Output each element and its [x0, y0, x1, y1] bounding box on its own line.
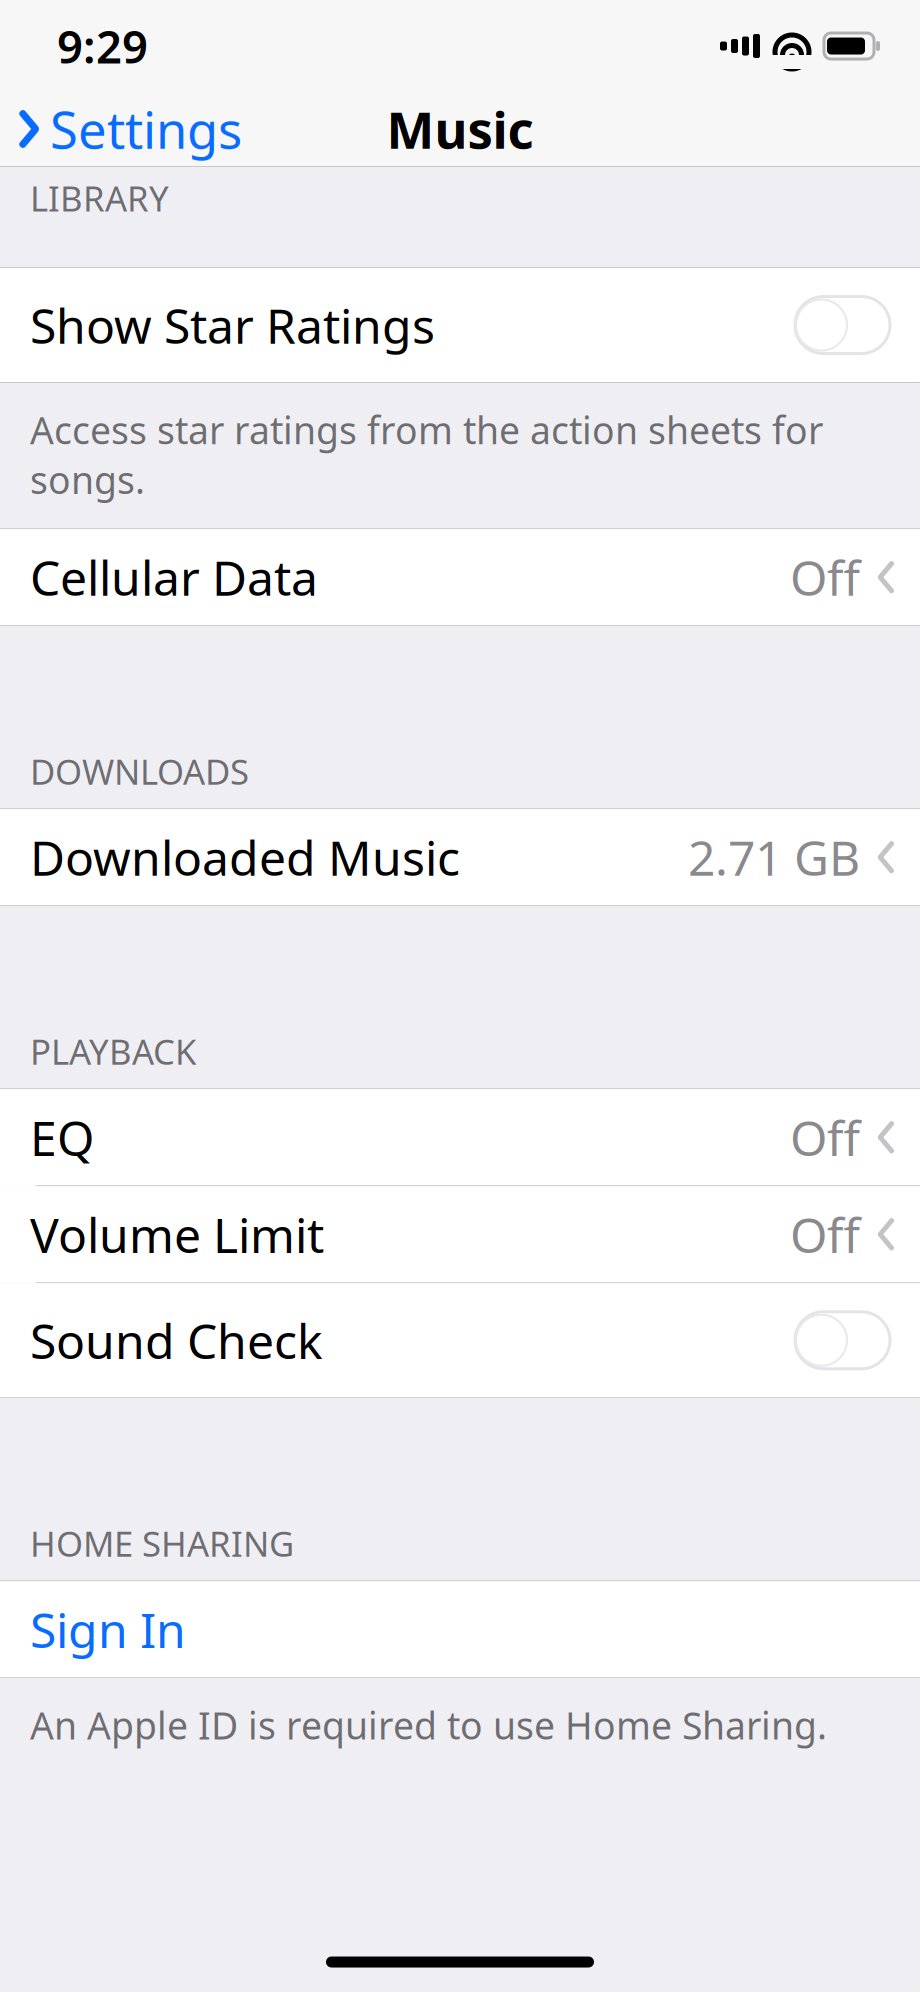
staticText: Sign In: [30, 1597, 186, 1661]
staticText: Show Star Ratings: [30, 293, 435, 357]
button[interactable]: Volume Limit: [0, 1186, 920, 1282]
staticText: Access star ratings from the action shee…: [30, 405, 823, 504]
staticText: Off: [790, 1202, 860, 1266]
button[interactable]: Settings: [0, 87, 242, 171]
button[interactable]: Sign In: [0, 1581, 920, 1677]
staticText: Off: [790, 545, 860, 609]
staticText: Music: [386, 95, 533, 163]
staticText: Downloaded Music: [30, 825, 460, 889]
staticText: Volume Limit: [30, 1202, 324, 1266]
staticText: LIBRARY: [30, 175, 169, 221]
staticText: 2.71 GB: [688, 825, 860, 889]
staticText: Cellular Data: [30, 545, 318, 609]
staticText: Off: [790, 1105, 860, 1169]
staticText: PLAYBACK: [30, 1028, 196, 1074]
staticText: An Apple ID is required to use Home Shar…: [30, 1700, 827, 1750]
staticText: EQ: [30, 1105, 94, 1169]
button[interactable]: Sound Check: [0, 1283, 920, 1397]
staticText: HOME SHARING: [30, 1520, 294, 1566]
staticText: 9:29: [57, 16, 148, 76]
staticText: Sound Check: [30, 1308, 323, 1372]
button[interactable]: Downloaded Music: [0, 809, 920, 905]
button[interactable]: Show Star Ratings: [0, 268, 920, 382]
staticText: DOWNLOADS: [30, 748, 249, 794]
button[interactable]: EQ: [0, 1089, 920, 1185]
staticText: Settings: [50, 95, 242, 163]
button[interactable]: Cellular Data: [0, 529, 920, 625]
